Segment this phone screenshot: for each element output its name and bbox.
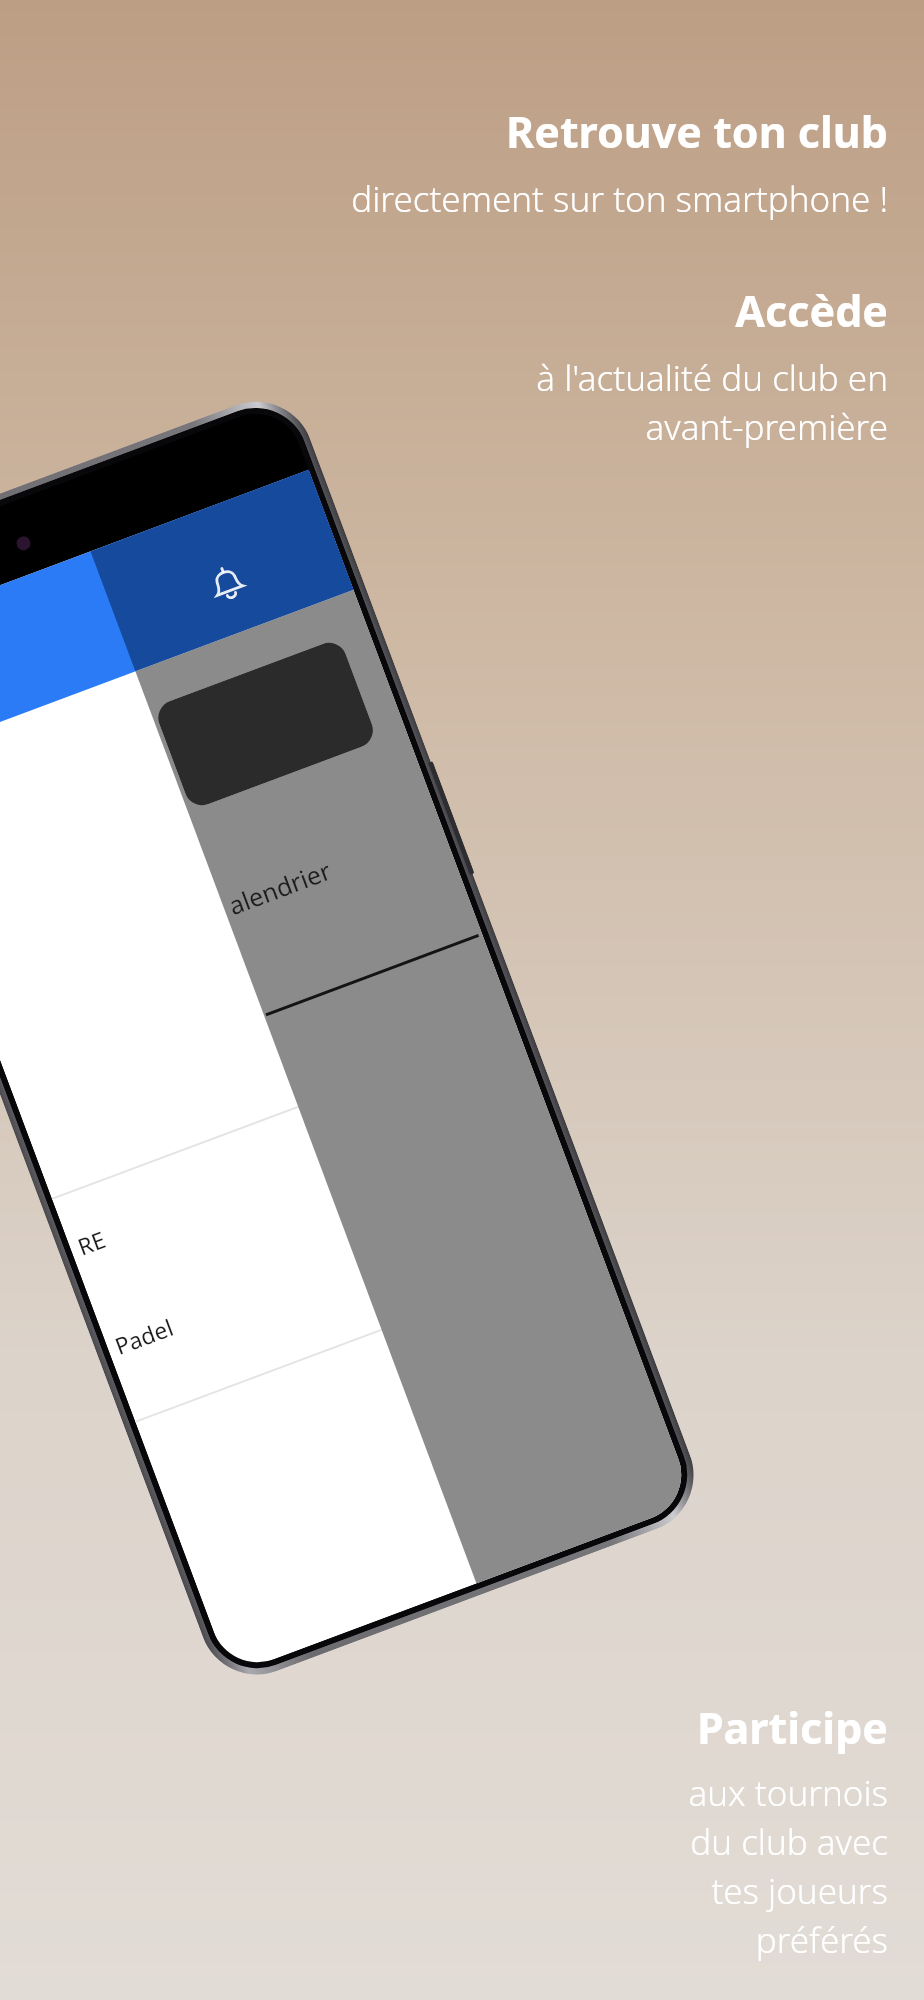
button[interactable]: Notifications bbox=[90, 470, 354, 671]
button[interactable]: Fermer bbox=[260, 549, 327, 616]
button[interactable]: Notifications bbox=[188, 544, 267, 623]
staticText: alendrier bbox=[224, 853, 336, 922]
staticText: RE bbox=[73, 1223, 110, 1262]
button[interactable] bbox=[0, 887, 502, 1160]
button[interactable] bbox=[0, 689, 428, 962]
button[interactable]: RE bbox=[52, 1026, 554, 1299]
button[interactable]: on bbox=[0, 590, 391, 863]
staticText: aux tournois du club avec tes joueurs pr… bbox=[0, 1769, 888, 1964]
staticText: directement sur ton smartphone ! bbox=[0, 175, 888, 223]
staticText: à l'actualité du club en avant-première bbox=[0, 354, 888, 451]
button[interactable]: alendrier bbox=[224, 853, 336, 922]
button[interactable] bbox=[0, 788, 465, 1061]
button[interactable]: Padel bbox=[89, 1125, 591, 1398]
button[interactable] bbox=[153, 638, 378, 810]
staticText: Participe bbox=[0, 1698, 888, 1757]
staticText: Retrouve ton club bbox=[0, 102, 888, 161]
staticText: Padel bbox=[110, 1311, 177, 1361]
staticText: Accède bbox=[0, 281, 888, 340]
button[interactable]: ma BOSSI LE bbox=[0, 470, 354, 763]
